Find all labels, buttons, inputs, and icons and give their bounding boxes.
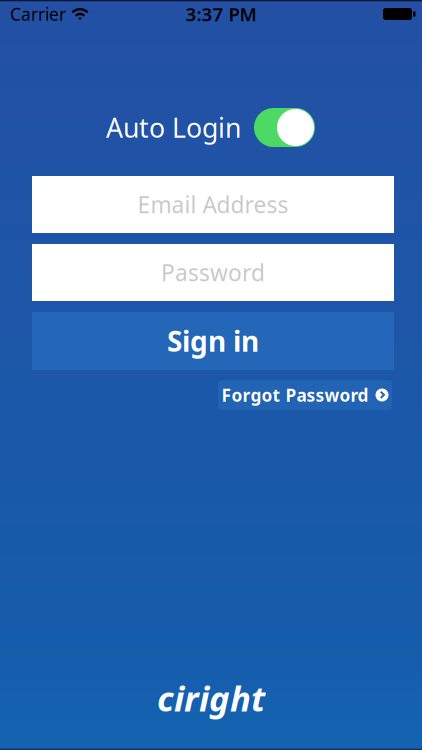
staticText: Auto Login: [106, 110, 241, 145]
staticText: Forgot Password: [221, 383, 368, 406]
button[interactable]: [254, 108, 315, 147]
staticText: Sign in: [167, 322, 259, 360]
staticText: Email Address: [137, 189, 288, 219]
button[interactable]: Email Address: [32, 176, 394, 233]
staticText: 3:37 PM: [185, 2, 256, 26]
staticText: ciright: [157, 675, 265, 721]
button[interactable]: Sign in: [32, 312, 394, 370]
button[interactable]: Forgot Password: [218, 380, 392, 410]
staticText: Password: [161, 257, 265, 287]
button[interactable]: Password: [32, 244, 394, 301]
staticText: Carrier: [10, 2, 66, 25]
